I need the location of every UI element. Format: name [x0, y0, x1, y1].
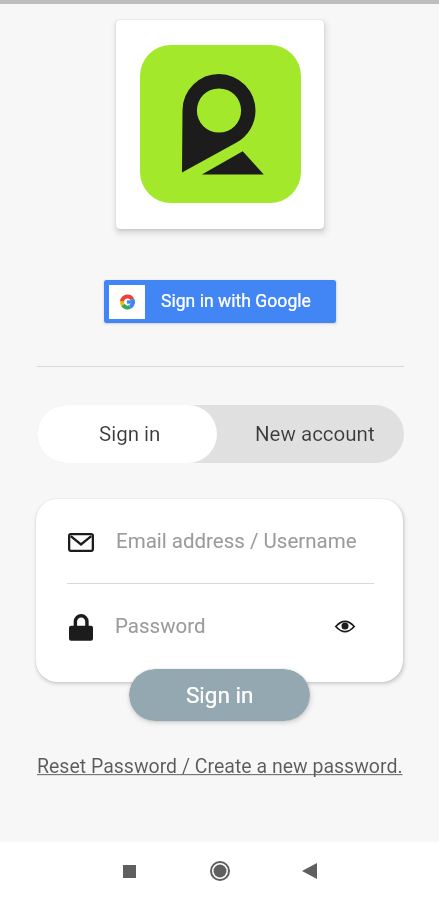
button[interactable]: Sign in: [37, 405, 217, 463]
staticText: Sign in: [99, 422, 161, 446]
button[interactable]: New account: [217, 405, 404, 463]
button[interactable]: Recent apps: [105, 847, 153, 895]
button[interactable]: Reset Password / Create a new password.: [37, 755, 403, 778]
button[interactable]: Sign in: [129, 669, 310, 721]
staticText: Email address / Username: [116, 529, 357, 553]
button[interactable]: Sign in with Google: [104, 280, 336, 323]
button[interactable]: [36, 584, 403, 664]
staticText: Sign in with Google: [161, 291, 311, 312]
button[interactable]: Back: [285, 847, 333, 895]
staticText: New account: [255, 422, 375, 446]
staticText: Password: [115, 614, 206, 638]
staticText: Reset Password / Create a new password.: [37, 755, 403, 778]
staticText: Sign in: [186, 682, 254, 708]
button[interactable]: [36, 499, 403, 583]
button[interactable]: Show password: [325, 606, 365, 646]
button[interactable]: Home: [196, 847, 244, 895]
